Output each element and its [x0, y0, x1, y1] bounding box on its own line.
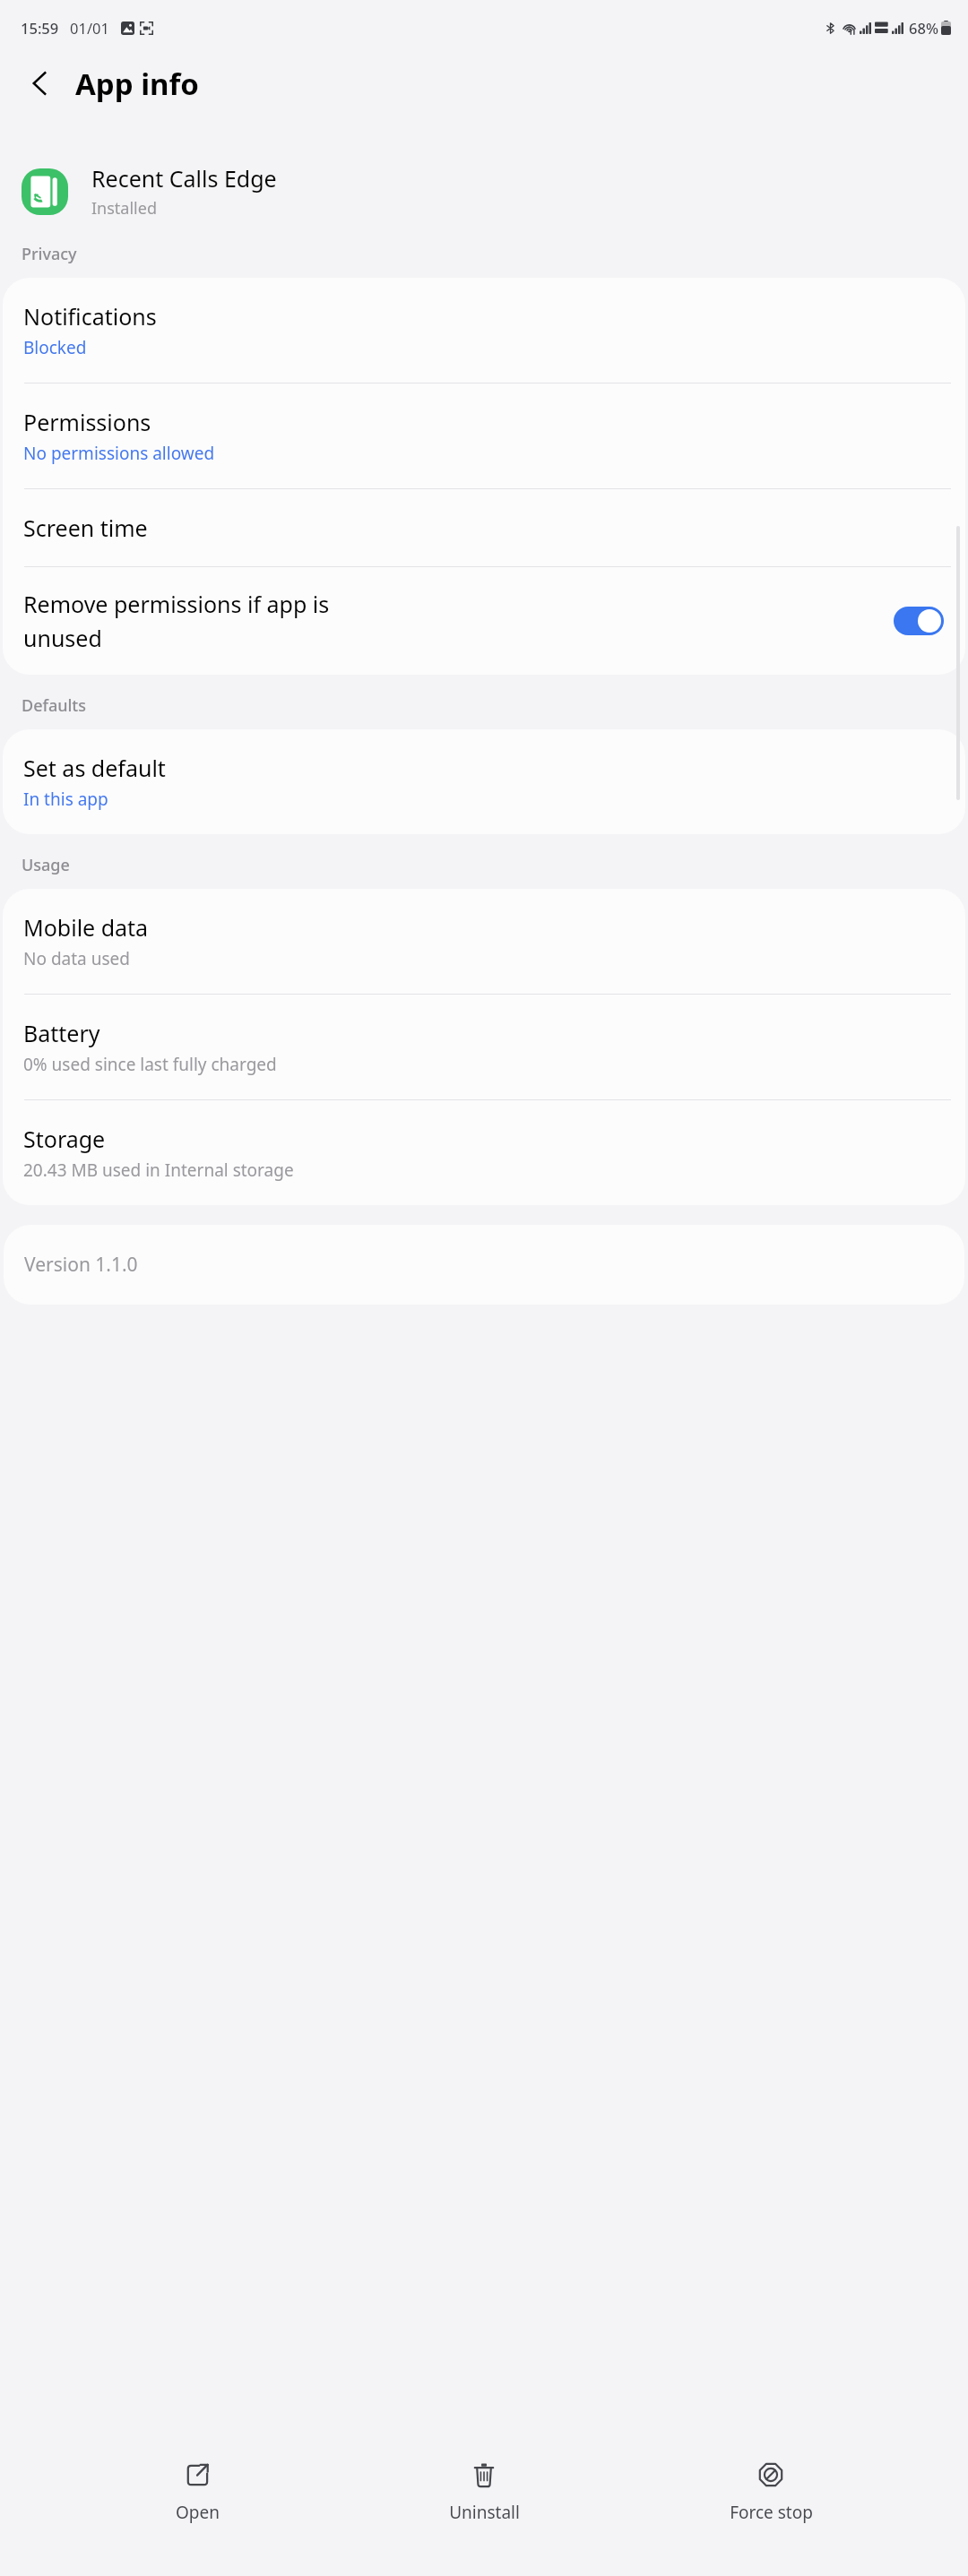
button[interactable]: Screen time [3, 489, 965, 566]
staticText: Open [176, 2501, 220, 2524]
button[interactable]: Battery [3, 995, 965, 1099]
staticText: 68% [909, 18, 938, 38]
staticText: Storage [23, 1124, 106, 1154]
staticText: Version 1.1.0 [24, 1252, 138, 1278]
staticText: Privacy [22, 243, 77, 265]
staticText: Installed [91, 197, 157, 220]
staticText: 01/01 [70, 18, 109, 38]
staticText: Defaults [22, 694, 86, 717]
button[interactable]: Remove permissions if app is unused [3, 567, 965, 675]
staticText: 0% used since last fully charged [23, 1053, 277, 1076]
button[interactable]: Notifications [3, 278, 965, 383]
staticText: Usage [22, 854, 70, 876]
button[interactable]: Mobile data [3, 889, 965, 994]
button[interactable]: Set as default [3, 729, 965, 834]
button[interactable]: Uninstall [394, 2440, 574, 2524]
staticText: Set as default [23, 753, 166, 783]
button[interactable]: Remove permissions if app is unused togg… [894, 607, 944, 635]
staticText: Uninstall [449, 2501, 520, 2524]
staticText: 15:59 [21, 18, 59, 38]
staticText: Force stop [730, 2501, 813, 2524]
button[interactable]: Force stop [681, 2440, 860, 2524]
staticText: No data used [23, 947, 130, 970]
button[interactable]: Back [13, 56, 68, 111]
button[interactable]: Storage [3, 1100, 965, 1205]
staticText: 20.43 MB used in Internal storage [23, 1159, 294, 1182]
staticText: Screen time [23, 513, 148, 543]
staticText: In this app [23, 788, 108, 811]
staticText: Blocked [23, 336, 87, 359]
staticText: Permissions [23, 407, 151, 437]
button[interactable]: Open [108, 2440, 287, 2524]
staticText: No permissions allowed [23, 442, 215, 465]
button[interactable]: Permissions [3, 383, 965, 488]
staticText: Mobile data [23, 912, 149, 943]
staticText: Battery [23, 1018, 100, 1048]
staticText: Notifications [23, 301, 157, 332]
staticText: Remove permissions if app is unused [23, 589, 330, 653]
staticText: Recent Calls Edge [91, 163, 277, 194]
staticText: App info [75, 64, 199, 104]
